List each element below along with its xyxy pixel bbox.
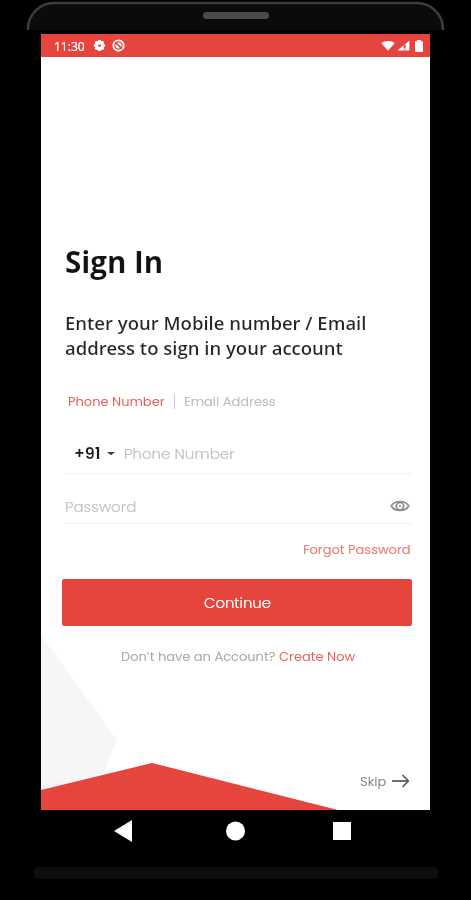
button[interactable]: Skip xyxy=(360,772,410,790)
staticText: Phone Number xyxy=(124,443,235,464)
button[interactable]: +91 xyxy=(65,442,115,464)
staticText: Create Now xyxy=(279,647,356,665)
button[interactable]: Create Now xyxy=(279,647,356,665)
button[interactable]: Phone Number xyxy=(68,392,165,410)
staticText: Continue xyxy=(204,592,271,613)
staticText: Phone Number xyxy=(68,392,165,410)
staticText: Forgot Password xyxy=(303,540,411,558)
staticText: Sign In xyxy=(65,241,164,281)
staticText: Enter your Mobile number / Email address… xyxy=(65,310,367,360)
button[interactable]: Forgot Password xyxy=(303,540,411,558)
button[interactable]: Continue xyxy=(62,579,412,626)
staticText: 11:30 xyxy=(54,38,85,54)
staticText: Email Address xyxy=(184,392,276,410)
button[interactable]: Email Address xyxy=(184,392,276,410)
button[interactable]: Show password xyxy=(389,495,411,517)
staticText: Skip xyxy=(360,772,387,790)
staticText: Don’t have an Account? xyxy=(121,647,279,665)
staticText: +91 xyxy=(74,442,101,464)
staticText: Password xyxy=(65,496,137,517)
